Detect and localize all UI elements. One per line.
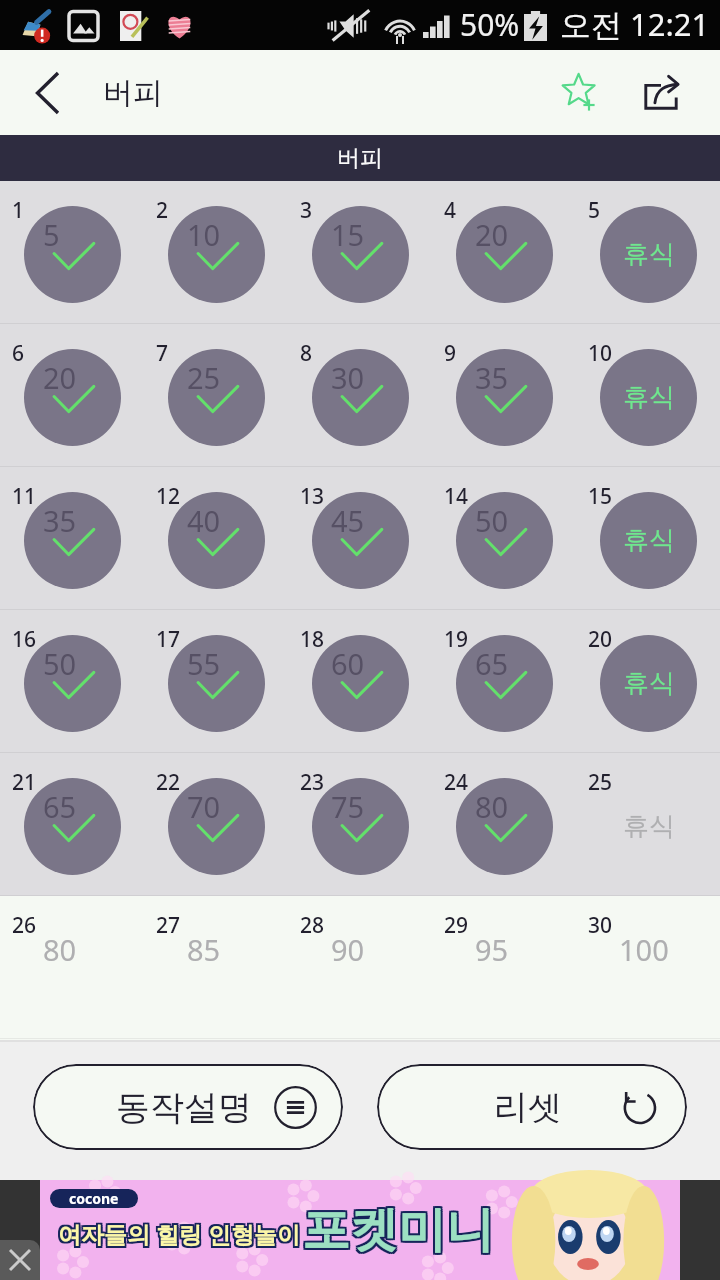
- button[interactable]: 휴식: [576, 324, 720, 467]
- staticText: 45: [331, 501, 365, 540]
- staticText: 여자들의 힐링 인형놀이: [56, 1218, 298, 1249]
- staticText: 50%: [460, 4, 520, 45]
- button[interactable]: 65: [432, 610, 576, 753]
- button[interactable]: 95: [432, 896, 576, 1039]
- staticText: 80: [43, 930, 77, 969]
- staticText: 버피: [337, 144, 383, 173]
- button[interactable]: 동작설명: [33, 1064, 343, 1150]
- staticText: 20: [43, 358, 77, 397]
- staticText: 25: [588, 768, 613, 797]
- staticText: 21: [12, 768, 37, 797]
- button[interactable]: 휴식: [576, 610, 720, 753]
- staticText: 17: [156, 625, 181, 654]
- staticText: 28: [300, 911, 325, 940]
- staticText: 포켓미니: [302, 1198, 494, 1258]
- button[interactable]: 80: [0, 896, 144, 1039]
- staticText: 25: [187, 358, 221, 397]
- staticText: 5: [43, 215, 60, 254]
- button[interactable]: Advertisement: [40, 1180, 680, 1280]
- staticText: 24: [444, 768, 469, 797]
- button[interactable]: 80: [432, 753, 576, 896]
- button[interactable]: 15: [288, 181, 432, 324]
- button[interactable]: Share: [621, 50, 701, 135]
- button[interactable]: 65: [0, 753, 144, 896]
- button[interactable]: 휴식: [576, 467, 720, 610]
- staticText: 여자들의 힐링 인형놀이: [58, 1218, 300, 1249]
- staticText: 10: [588, 339, 613, 368]
- button[interactable]: 휴식: [576, 753, 720, 896]
- staticText: 100: [619, 930, 669, 969]
- staticText: 95: [475, 930, 509, 969]
- staticText: 여자들의 힐링 인형놀이: [60, 1216, 302, 1247]
- staticText: cocone: [69, 1189, 119, 1208]
- staticText: 2: [156, 196, 169, 225]
- staticText: 35: [475, 358, 509, 397]
- button[interactable]: 5: [0, 181, 144, 324]
- staticText: 8: [300, 339, 313, 368]
- button[interactable]: 50: [0, 610, 144, 753]
- button[interactable]: 90: [288, 896, 432, 1039]
- button[interactable]: 10: [144, 181, 288, 324]
- staticText: 50: [43, 644, 77, 683]
- button[interactable]: 85: [144, 896, 288, 1039]
- staticText: 15: [588, 482, 613, 511]
- staticText: 포켓미니: [304, 1198, 496, 1258]
- button[interactable]: 20: [432, 181, 576, 324]
- button[interactable]: 35: [432, 324, 576, 467]
- staticText: 오전 12:21: [560, 3, 710, 45]
- staticText: 65: [475, 644, 509, 683]
- staticText: 리셋: [494, 1086, 562, 1129]
- staticText: 50: [475, 501, 509, 540]
- button[interactable]: 100: [576, 896, 720, 1039]
- staticText: 여자들의 힐링 인형놀이: [58, 1216, 300, 1247]
- button[interactable]: 25: [144, 324, 288, 467]
- staticText: 포켓미니: [302, 1200, 494, 1260]
- staticText: 19: [444, 625, 469, 654]
- button[interactable]: 75: [288, 753, 432, 896]
- button[interactable]: 60: [288, 610, 432, 753]
- staticText: 10: [187, 215, 221, 254]
- staticText: 35: [43, 501, 77, 540]
- button[interactable]: Close ad: [0, 1240, 40, 1280]
- staticText: 6: [12, 339, 25, 368]
- button[interactable]: 45: [288, 467, 432, 610]
- staticText: 포켓미니: [300, 1200, 492, 1260]
- staticText: 포켓미니: [300, 1202, 492, 1262]
- staticText: 15: [331, 215, 365, 254]
- staticText: 포켓미니: [304, 1202, 496, 1262]
- button[interactable]: Back: [0, 50, 94, 135]
- staticText: 27: [156, 911, 181, 940]
- staticText: 휴식: [623, 667, 675, 700]
- button[interactable]: Add to favorites: [541, 50, 621, 135]
- staticText: 9: [444, 339, 457, 368]
- staticText: 동작설명: [116, 1086, 252, 1129]
- staticText: 휴식: [623, 810, 675, 843]
- staticText: 포켓미니: [300, 1198, 492, 1258]
- staticText: 12: [156, 482, 181, 511]
- staticText: 버피: [103, 74, 163, 112]
- staticText: 60: [331, 644, 365, 683]
- button[interactable]: 50: [432, 467, 576, 610]
- button[interactable]: 40: [144, 467, 288, 610]
- staticText: 70: [187, 787, 221, 826]
- staticText: 65: [43, 787, 77, 826]
- staticText: 3: [300, 196, 313, 225]
- button[interactable]: 55: [144, 610, 288, 753]
- staticText: 30: [588, 911, 613, 940]
- staticText: 4: [444, 196, 457, 225]
- staticText: 14: [444, 482, 469, 511]
- staticText: 16: [12, 625, 37, 654]
- staticText: 20: [588, 625, 613, 654]
- staticText: 85: [187, 930, 221, 969]
- button[interactable]: 35: [0, 467, 144, 610]
- staticText: 휴식: [623, 524, 675, 557]
- button[interactable]: 리셋: [377, 1064, 687, 1150]
- button[interactable]: 20: [0, 324, 144, 467]
- staticText: 29: [444, 911, 469, 940]
- staticText: 여자들의 힐링 인형놀이: [60, 1220, 302, 1251]
- staticText: 1: [12, 196, 25, 225]
- button[interactable]: 30: [288, 324, 432, 467]
- button[interactable]: 휴식: [576, 181, 720, 324]
- staticText: 55: [187, 644, 221, 683]
- button[interactable]: 70: [144, 753, 288, 896]
